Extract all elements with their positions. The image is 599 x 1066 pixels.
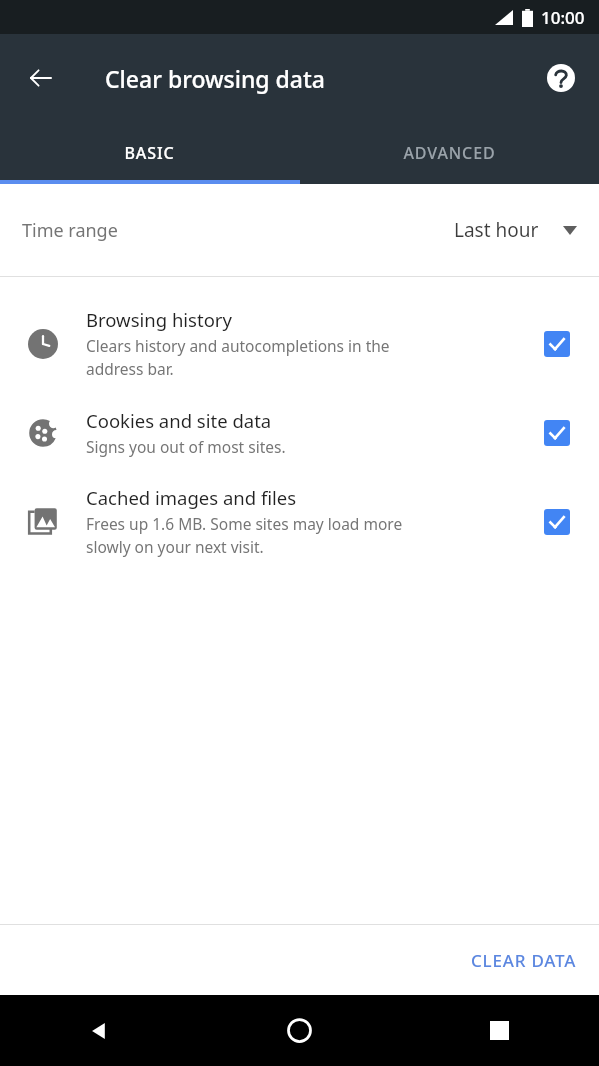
staticText: Clears history and autocompletions in th… — [86, 335, 390, 380]
button[interactable]: Cached images and files — [0, 471, 599, 572]
staticText: Cached images and files — [86, 485, 297, 510]
staticText: Clear browsing data — [105, 63, 325, 94]
button[interactable]: Back — [17, 54, 65, 102]
button[interactable]: Cached images and files — [537, 502, 577, 542]
button[interactable]: Cookies and site data — [537, 413, 577, 453]
staticText: ADVANCED — [403, 142, 496, 164]
button[interactable]: Back — [0, 995, 199, 1066]
button[interactable]: Browsing history — [537, 324, 577, 364]
staticText: Cookies and site data — [86, 408, 272, 433]
button[interactable]: CLEAR DATA — [463, 941, 585, 980]
button[interactable]: Browsing history — [0, 293, 599, 394]
staticText: Browsing history — [86, 307, 232, 332]
staticText: Last hour — [454, 217, 539, 243]
staticText: Frees up 1.6 MB. Some sites may load mor… — [86, 513, 403, 558]
staticText: BASIC — [124, 142, 175, 164]
staticText: 10:00 — [541, 6, 585, 29]
button[interactable]: ADVANCED — [299, 122, 599, 184]
button[interactable]: BASIC — [0, 122, 299, 184]
staticText: CLEAR DATA — [471, 949, 577, 972]
staticText: Time range — [22, 218, 118, 243]
button[interactable]: Home — [199, 995, 399, 1066]
button[interactable]: Recent apps — [399, 995, 599, 1066]
button[interactable]: Time range — [0, 184, 599, 276]
staticText: Signs you out of most sites. — [86, 436, 286, 457]
button[interactable]: Cookies and site data — [0, 394, 599, 471]
button[interactable]: Help — [537, 54, 585, 102]
